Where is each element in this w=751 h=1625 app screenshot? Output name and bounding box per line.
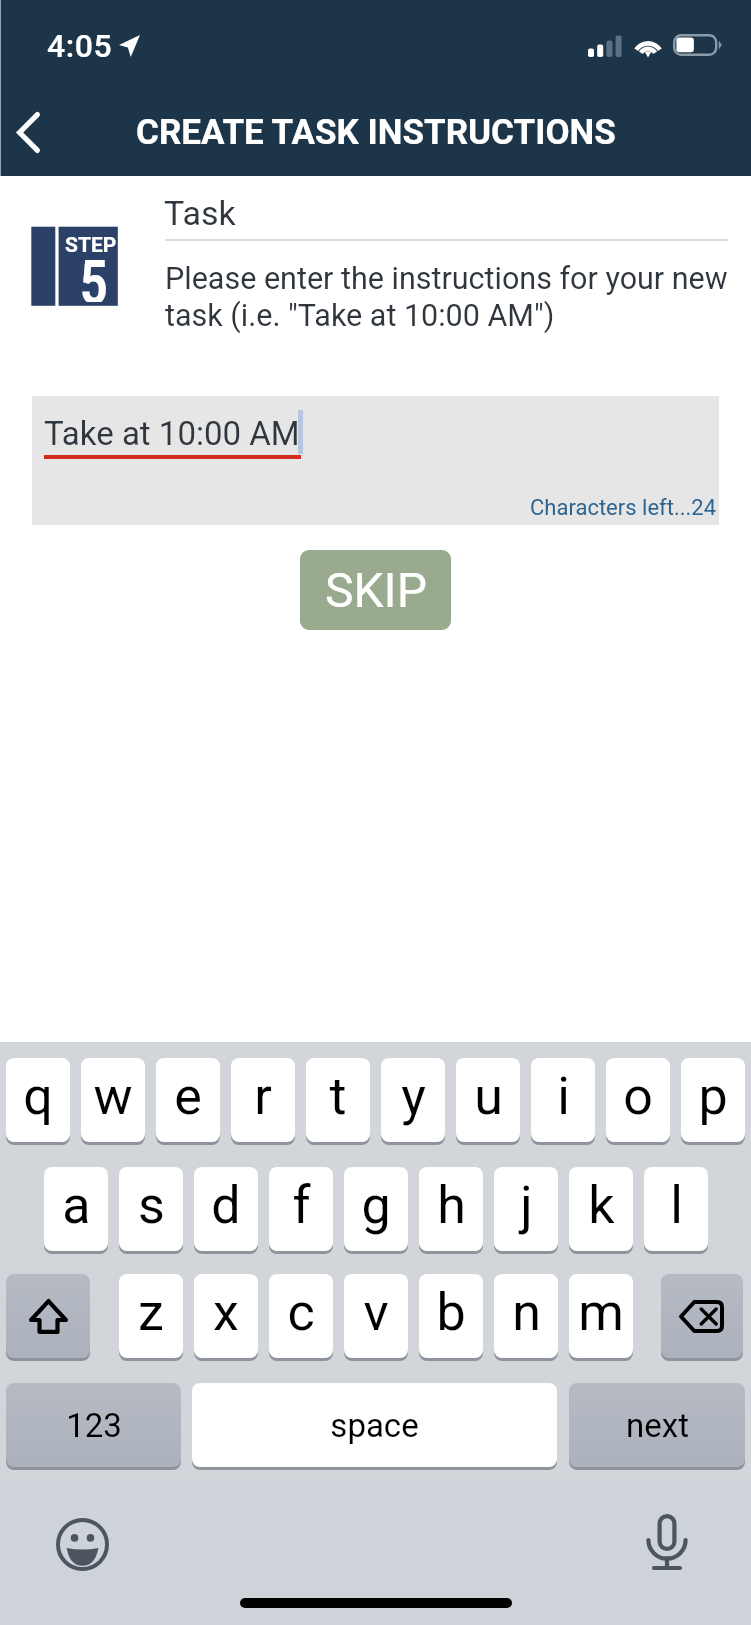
button[interactable]: space [192,1383,557,1467]
button[interactable]: next [569,1383,745,1467]
button[interactable]: a [44,1167,108,1251]
button[interactable]: Take at 10:00 AM [32,396,719,525]
staticText: n [512,1282,541,1343]
staticText: Take at 10:00 AM [44,414,300,453]
staticText: k [588,1175,615,1236]
staticText: STEP [65,233,117,258]
staticText: z [138,1282,164,1343]
staticText: Characters left...24 [530,495,717,521]
staticText: c [287,1282,315,1343]
staticText: p [698,1066,728,1127]
staticText: h [437,1175,466,1236]
staticText: l [670,1175,683,1236]
button[interactable]: r [231,1058,295,1142]
staticText: w [93,1066,133,1127]
staticText: m [578,1282,624,1343]
staticText: 5 [80,247,108,302]
button[interactable]: i [531,1058,595,1142]
staticText: x [213,1282,239,1343]
button[interactable]: m [569,1274,633,1358]
staticText: j [520,1175,533,1236]
staticText: e [174,1066,202,1127]
staticText: y [401,1066,426,1127]
button[interactable]: v [344,1274,408,1358]
button[interactable]: e [156,1058,220,1142]
button[interactable]: q [6,1058,70,1142]
staticText: r [254,1066,272,1127]
button[interactable]: n [494,1274,558,1358]
staticText: d [211,1175,241,1236]
button[interactable]: y [381,1058,445,1142]
staticText: 123 [66,1406,122,1445]
button[interactable]: Back [0,92,58,172]
button[interactable]: Backspace [661,1274,743,1358]
button[interactable]: Emoji keyboard [56,1518,109,1571]
button[interactable]: f [269,1167,333,1251]
staticText: u [474,1066,503,1127]
button[interactable]: l [644,1167,708,1251]
staticText: g [361,1175,391,1236]
button[interactable]: w [81,1058,145,1142]
staticText: f [292,1175,311,1236]
staticText: 4:05 [47,27,113,65]
button[interactable]: g [344,1167,408,1251]
staticText: CREATE TASK INSTRUCTIONS [136,112,616,153]
button[interactable]: k [569,1167,633,1251]
button[interactable]: x [194,1274,258,1358]
staticText: v [363,1282,389,1343]
button[interactable]: j [494,1167,558,1251]
staticText: SKIP [325,562,427,618]
staticText: next [626,1406,689,1445]
staticText: Please enter the instructions for your n… [165,261,743,333]
staticText: Task [164,193,236,233]
button[interactable]: z [119,1274,183,1358]
staticText: a [62,1175,91,1236]
staticText: space [330,1406,419,1445]
button[interactable]: p [681,1058,745,1142]
staticText: i [557,1066,570,1127]
staticText: s [138,1175,165,1236]
button[interactable]: o [606,1058,670,1142]
staticText: q [23,1066,53,1127]
staticText: b [436,1282,466,1343]
button[interactable]: Shift [6,1274,90,1358]
button[interactable]: t [306,1058,370,1142]
button[interactable]: 123 [6,1383,181,1467]
button[interactable]: Voice input [646,1512,688,1572]
button[interactable]: h [419,1167,483,1251]
button[interactable]: SKIP [300,550,451,630]
staticText: o [623,1066,653,1127]
button[interactable]: b [419,1274,483,1358]
button[interactable]: d [194,1167,258,1251]
button[interactable]: s [119,1167,183,1251]
button[interactable]: u [456,1058,520,1142]
staticText: t [329,1066,347,1127]
button[interactable]: c [269,1274,333,1358]
